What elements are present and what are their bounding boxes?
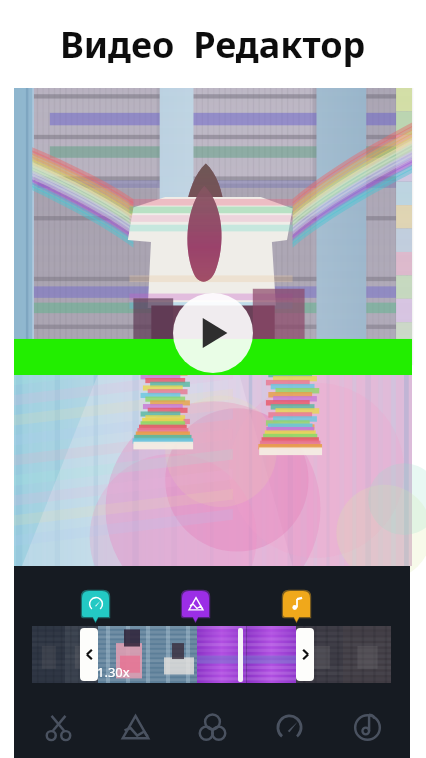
button[interactable]: Music bbox=[339, 699, 395, 755]
button[interactable]: Play bbox=[173, 293, 253, 373]
button[interactable]: Music bbox=[283, 591, 310, 622]
button[interactable]: Speed bbox=[261, 699, 317, 755]
button[interactable]: Effect bbox=[182, 591, 209, 622]
button[interactable]: Effects bbox=[107, 699, 163, 755]
staticText: Видео Редактор bbox=[60, 20, 366, 69]
button[interactable]: Speed bbox=[82, 591, 109, 622]
button[interactable]: Trim start bbox=[80, 628, 98, 681]
button[interactable]: Cut bbox=[30, 699, 86, 755]
button[interactable]: Trim end bbox=[296, 628, 314, 681]
staticText: 1.30x bbox=[97, 663, 130, 681]
button[interactable]: Filters bbox=[184, 699, 240, 755]
